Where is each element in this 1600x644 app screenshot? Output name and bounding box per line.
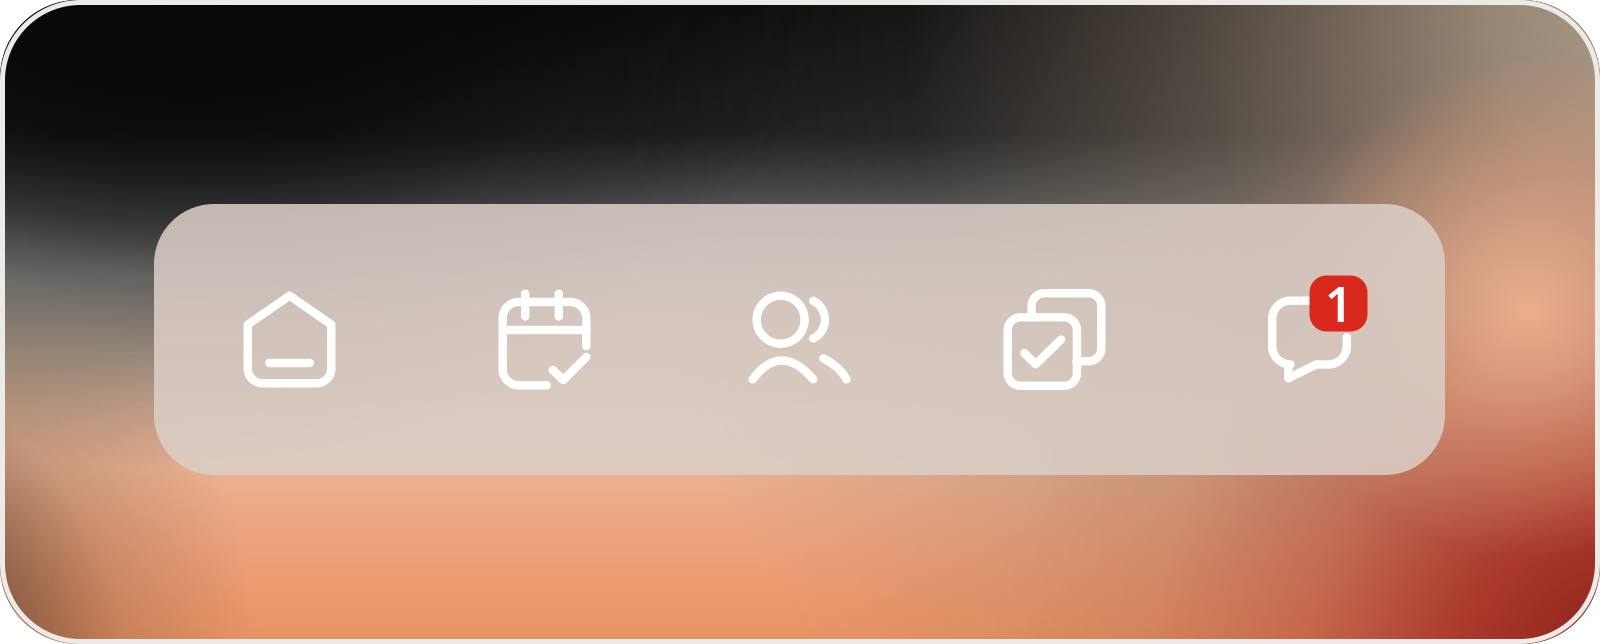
button[interactable]: Contacts — [672, 204, 927, 475]
button[interactable]: Messages — [1182, 204, 1437, 475]
button[interactable]: Home — [162, 204, 417, 475]
staticText: 1 — [1325, 272, 1352, 335]
button[interactable]: Calendar — [417, 204, 672, 475]
button[interactable]: Tasks — [927, 204, 1182, 475]
